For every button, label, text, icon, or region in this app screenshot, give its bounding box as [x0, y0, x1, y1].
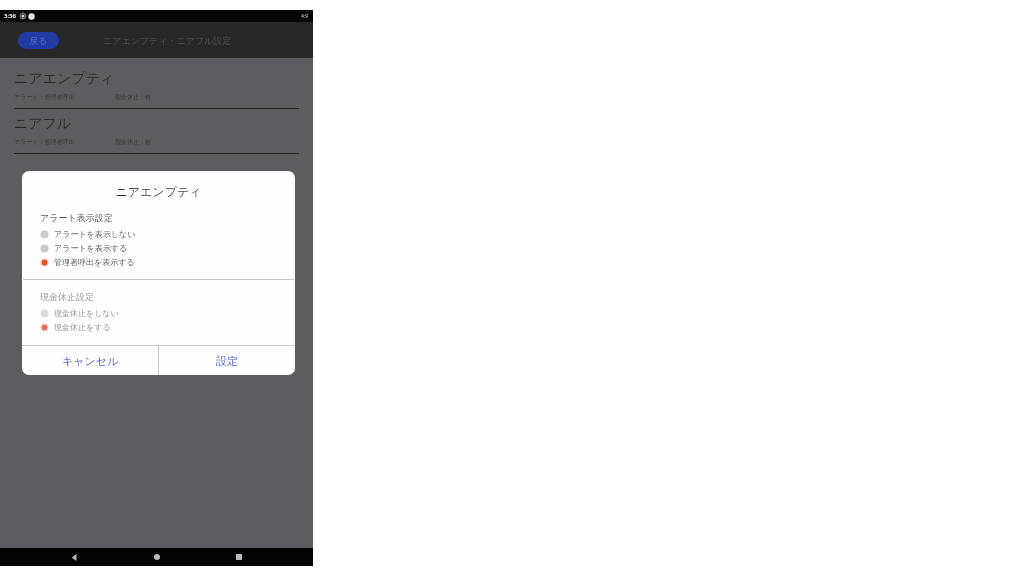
staticText: 現金休止：有 — [115, 93, 151, 101]
staticText: 4:9 — [301, 13, 309, 20]
staticText: 3:36 — [4, 12, 16, 20]
button[interactable]: ニアエンプティ — [14, 64, 299, 109]
staticText: 現金休止設定 — [40, 291, 94, 302]
button[interactable]: キャンセル — [22, 346, 158, 375]
button[interactable]: Recents — [230, 548, 248, 566]
button[interactable]: 設定 — [159, 346, 295, 375]
button[interactable]: Home — [148, 548, 166, 566]
button[interactable]: 戻る — [18, 32, 59, 49]
staticText: ニアエンプティ・ニアフル設定 — [103, 35, 232, 46]
staticText: アラート：管理者呼出 — [14, 138, 75, 146]
staticText: アラート：管理者呼出 — [14, 93, 75, 101]
button[interactable]: ニアフル — [14, 109, 299, 154]
button[interactable]: アラートを表示する — [40, 243, 281, 253]
staticText: 管理者呼出を表示する — [54, 257, 135, 267]
staticText: アラートを表示する — [54, 243, 128, 253]
button[interactable]: 管理者呼出を表示する — [40, 257, 281, 267]
button[interactable]: 現金休止をしない — [40, 308, 281, 318]
staticText: ニアフル — [14, 115, 72, 133]
staticText: 設定 — [216, 354, 238, 368]
staticText: ニアエンプティ — [22, 184, 295, 199]
button[interactable]: アラートを表示しない — [40, 229, 281, 239]
staticText: 戻る — [29, 35, 48, 46]
staticText: アラートを表示しない — [54, 229, 136, 239]
staticText: 現金休止をする — [54, 322, 111, 332]
staticText: キャンセル — [62, 354, 119, 368]
staticText: 現金休止をしない — [54, 308, 119, 318]
button[interactable]: Back — [65, 548, 83, 566]
button[interactable]: 現金休止をする — [40, 322, 281, 332]
staticText: 現金休止：有 — [115, 138, 151, 146]
staticText: ニアエンプティ — [14, 70, 115, 88]
staticText: アラート表示設定 — [40, 212, 113, 223]
